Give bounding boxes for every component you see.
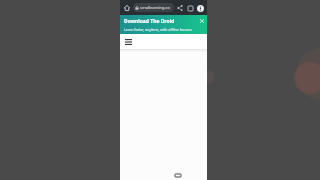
button[interactable]: Download The Droid Learning App [120,15,207,34]
button[interactable]: Tabs [185,3,195,13]
button[interactable]: Media control [172,173,183,178]
button[interactable]: Share [175,3,185,13]
staticText: Download The Droid Learning App [124,18,195,25]
staticText: smallearning.com [140,5,172,10]
button[interactable]: Home [122,3,132,13]
button[interactable]: smallearning.com [133,3,174,12]
button[interactable]: Menu [123,37,133,47]
button[interactable]: More options [195,3,205,13]
button[interactable]: Close banner [198,17,205,24]
staticText: Learn faster, anytime, with offline less… [124,27,192,32]
